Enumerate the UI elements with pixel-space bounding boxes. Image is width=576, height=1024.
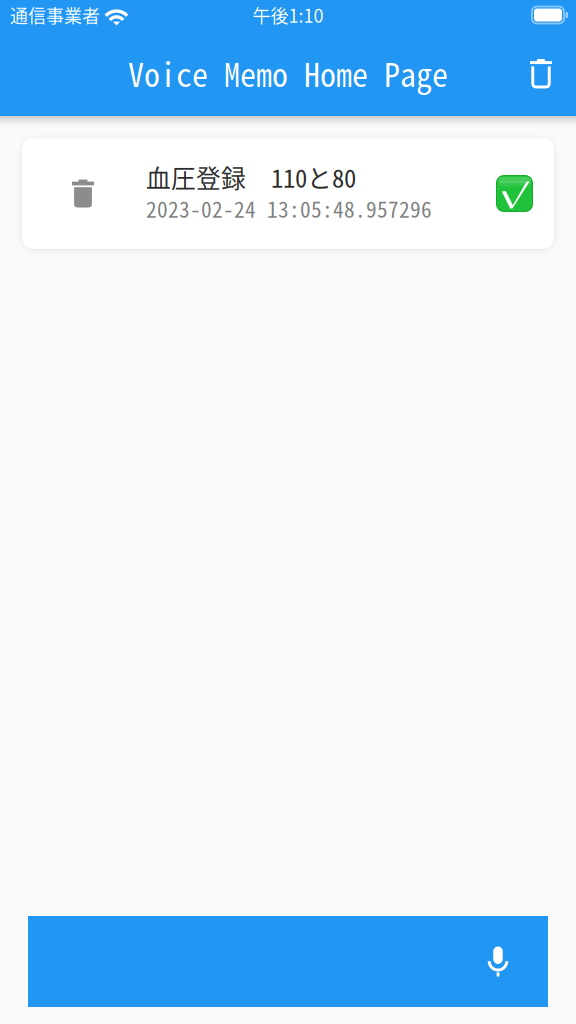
staticText: 2023-02-24 13:05:48.957296 bbox=[146, 193, 432, 224]
button[interactable]: 血圧登録 110と80 bbox=[22, 138, 554, 249]
button[interactable]: Delete all memos bbox=[517, 49, 565, 97]
staticText: 通信事業者 bbox=[10, 2, 100, 28]
staticText: 午後1:10 bbox=[252, 2, 323, 28]
button[interactable]: Record voice memo bbox=[28, 916, 548, 1007]
staticText: 血圧登録 110と80 bbox=[146, 159, 356, 195]
staticText: Voice Memo Home Page bbox=[128, 50, 448, 96]
